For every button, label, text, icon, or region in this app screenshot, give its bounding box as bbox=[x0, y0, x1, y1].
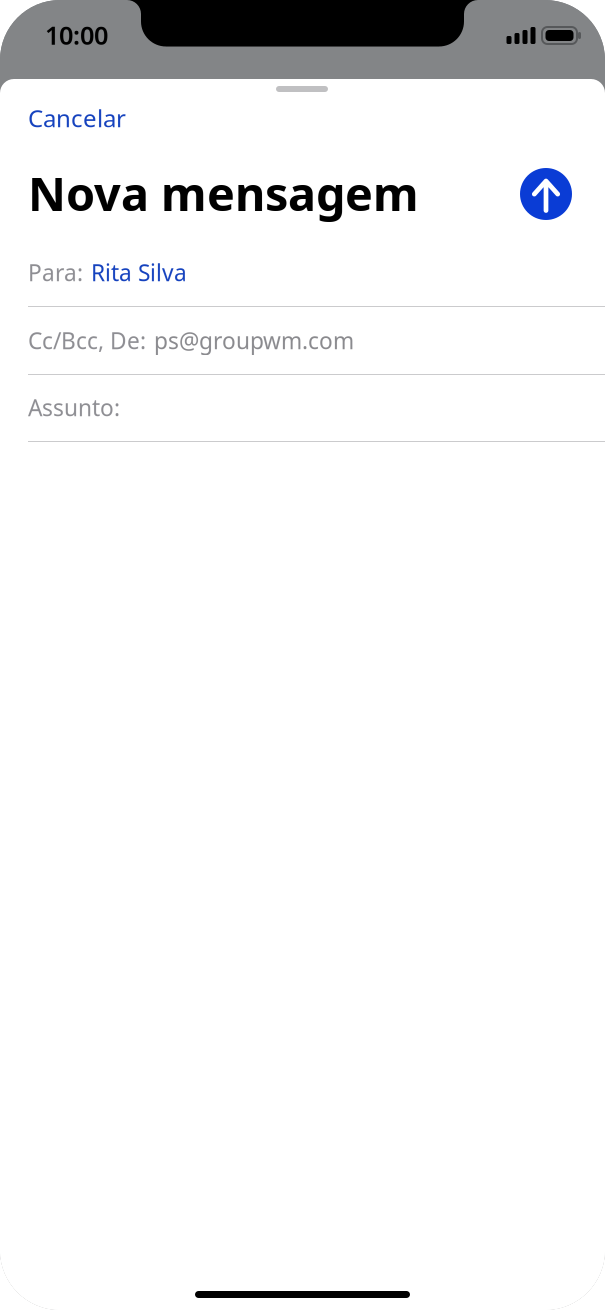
staticText: Nova mensagem bbox=[28, 162, 419, 224]
button[interactable]: Cancelar bbox=[0, 96, 142, 140]
staticText: ps@groupwm.com bbox=[154, 325, 354, 355]
staticText: Rita Silva bbox=[91, 257, 187, 287]
button[interactable]: Assunto: bbox=[0, 374, 605, 441]
button[interactable]: Cc/Bcc, De: bbox=[0, 307, 605, 374]
staticText: Assunto: bbox=[28, 392, 120, 422]
staticText: Cancelar bbox=[28, 102, 126, 134]
staticText: 10:00 bbox=[45, 18, 108, 52]
button[interactable]: Para: bbox=[0, 239, 605, 306]
staticText: Para: bbox=[28, 257, 83, 287]
button[interactable]: Corpo da mensagem bbox=[0, 442, 605, 1310]
staticText: Cc/Bcc, De: bbox=[28, 325, 146, 355]
button[interactable]: Enviar bbox=[520, 168, 572, 220]
